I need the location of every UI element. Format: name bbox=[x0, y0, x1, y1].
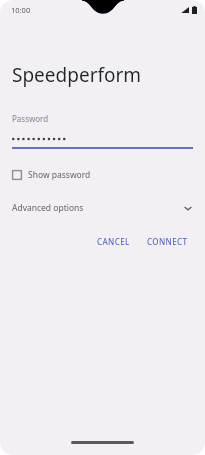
staticText: CANCEL bbox=[97, 236, 130, 247]
button[interactable]: Advanced options bbox=[12, 200, 193, 216]
staticText: CONNECT bbox=[147, 236, 188, 247]
button[interactable]: CANCEL bbox=[92, 233, 135, 250]
button[interactable] bbox=[12, 131, 193, 147]
staticText: Speedperform bbox=[12, 62, 142, 88]
staticText: Show password bbox=[28, 169, 91, 181]
button[interactable]: CONNECT bbox=[142, 233, 193, 250]
staticText: Password bbox=[12, 113, 49, 124]
button[interactable]: Show password bbox=[12, 169, 193, 181]
staticText: Advanced options bbox=[12, 202, 84, 214]
staticText: 10:00 bbox=[11, 5, 31, 15]
